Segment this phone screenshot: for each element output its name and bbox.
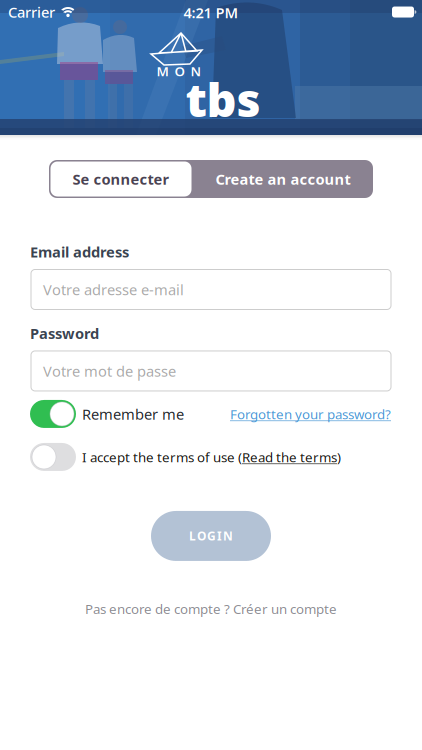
staticText: Email address <box>30 242 129 261</box>
button[interactable]: Votre adresse e-mail <box>31 269 391 309</box>
staticText: Se connecter <box>72 169 169 189</box>
staticText: 4:21 PM <box>183 3 238 22</box>
staticText: Remember me <box>82 404 184 424</box>
button[interactable]: Votre mot de passe <box>31 351 391 391</box>
button[interactable]: Remember me <box>30 400 184 428</box>
button[interactable]: Pas encore de compte ? Créer un compte <box>85 600 337 618</box>
button[interactable]: L O G I N <box>151 511 271 561</box>
button[interactable]: Se connecter <box>50 161 191 196</box>
staticText: Votre mot de passe <box>43 361 176 381</box>
button[interactable]: Create an account <box>193 161 373 196</box>
staticText: Carrier <box>8 2 55 22</box>
button[interactable]: Forgotten your password? <box>230 405 391 423</box>
staticText: Password <box>30 323 99 343</box>
staticText: Votre adresse e-mail <box>43 280 184 299</box>
staticText: Forgotten your password? <box>230 405 391 423</box>
staticText: Pas encore de compte ? Créer un compte <box>85 600 337 618</box>
staticText: tbs <box>185 68 260 130</box>
staticText: MON <box>156 62 201 80</box>
button[interactable]: I accept the terms of use (Read the term… <box>30 443 341 471</box>
staticText: L O G I N <box>189 528 233 544</box>
staticText: Create an account <box>215 169 350 189</box>
staticText: I accept the terms of use (Read the term… <box>82 448 341 466</box>
